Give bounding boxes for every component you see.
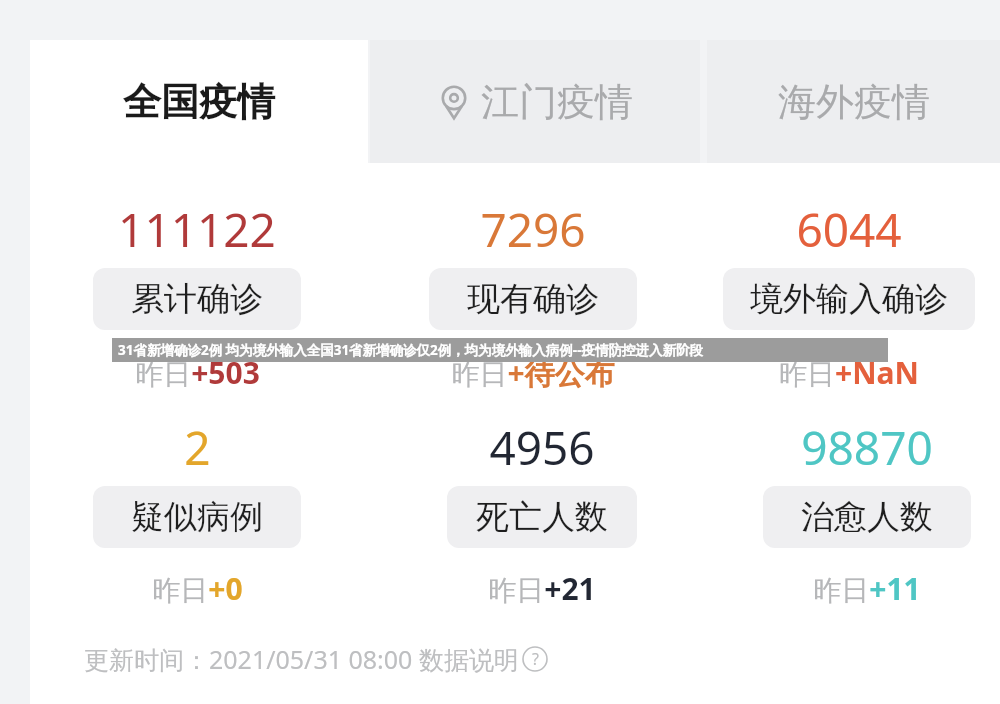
staticText: 现有确诊 bbox=[467, 278, 599, 320]
staticText: 31省新增确诊2例 均为境外输入全国31省新增确诊仅2例，均为境外输入病例--疫… bbox=[118, 341, 703, 359]
staticText: 境外输入确诊 bbox=[750, 278, 948, 320]
staticText: 疑似病例 bbox=[131, 496, 263, 538]
staticText: 累计确诊 bbox=[131, 278, 263, 320]
button[interactable]: 31省新增确诊2例 均为境外输入全国31省新增确诊仅2例，均为境外输入病例--疫… bbox=[112, 338, 888, 362]
staticText: 江门疫情 bbox=[481, 78, 633, 126]
staticText: 7296 bbox=[480, 198, 586, 256]
staticText: 昨日+0 bbox=[152, 568, 243, 608]
button[interactable]: 治愈人数 bbox=[763, 486, 971, 548]
button[interactable]: 境外输入确诊 bbox=[723, 268, 975, 330]
button[interactable]: 死亡人数 bbox=[447, 486, 637, 548]
button[interactable]: 江门疫情 bbox=[370, 40, 700, 163]
staticText: 更新时间：2021/05/31 08:00 数据说明 bbox=[84, 642, 519, 676]
staticText: 111122 bbox=[118, 198, 276, 256]
staticText: 昨日+NaN bbox=[779, 352, 919, 392]
staticText: 98870 bbox=[801, 416, 933, 474]
other: 数据说明 bbox=[522, 646, 548, 672]
staticText: ? bbox=[532, 648, 539, 670]
button[interactable]: 现有确诊 bbox=[429, 268, 637, 330]
staticText: 全国疫情 bbox=[123, 78, 275, 126]
staticText: 2 bbox=[184, 416, 211, 474]
staticText: 昨日+503 bbox=[135, 352, 260, 392]
staticText: 死亡人数 bbox=[476, 496, 608, 538]
staticText: 昨日+待公布 bbox=[451, 352, 615, 392]
staticText: 治愈人数 bbox=[801, 496, 933, 538]
staticText: 海外疫情 bbox=[778, 78, 930, 126]
button[interactable]: 全国疫情 bbox=[30, 40, 368, 163]
button[interactable]: 海外疫情 bbox=[707, 40, 1000, 163]
button[interactable]: 累计确诊 bbox=[93, 268, 301, 330]
staticText: 6044 bbox=[796, 198, 902, 256]
staticText: 昨日+11 bbox=[813, 568, 921, 608]
button[interactable]: 疑似病例 bbox=[93, 486, 301, 548]
staticText: 昨日+21 bbox=[488, 568, 596, 608]
button[interactable]: 更新时间：2021/05/31 08:00 数据说明 bbox=[84, 642, 548, 676]
staticText: 4956 bbox=[489, 416, 595, 474]
